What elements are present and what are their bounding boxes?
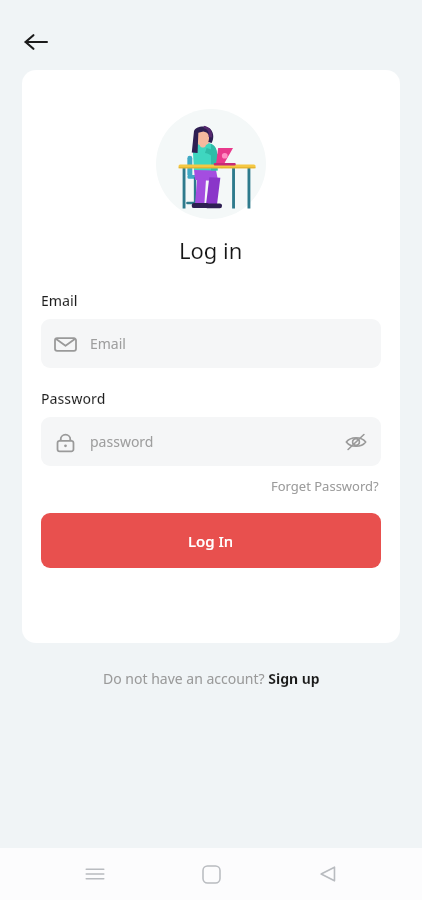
button[interactable]: password (41, 417, 381, 466)
button[interactable]: Home (189, 852, 233, 896)
staticText: password (90, 432, 154, 451)
button[interactable]: Back (306, 852, 350, 896)
button[interactable]: Recents (73, 852, 117, 896)
staticText: Email (90, 334, 126, 353)
button[interactable]: Show password (344, 430, 368, 454)
staticText: Do not have an account? Sign up (103, 669, 320, 688)
button[interactable]: Email (41, 319, 381, 368)
button[interactable]: Forget Password? (269, 475, 381, 497)
staticText: Log in (179, 235, 243, 265)
button[interactable]: Do not have an account? Sign up (97, 665, 326, 692)
staticText: Log In (188, 531, 234, 551)
staticText: Email (41, 291, 78, 310)
staticText: Password (41, 389, 106, 408)
staticText: Forget Password? (271, 477, 379, 495)
button[interactable]: Log In (41, 513, 381, 568)
button[interactable]: Back (14, 20, 58, 64)
